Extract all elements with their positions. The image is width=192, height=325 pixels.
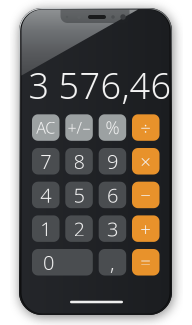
staticText: , [110,249,115,276]
button[interactable]: Divide [132,114,159,141]
button[interactable]: 0 [32,249,93,275]
staticText: ÷ [140,115,151,140]
staticText: = [140,250,151,275]
button[interactable]: 1 [32,215,59,242]
staticText: AC [36,117,55,138]
staticText: − [140,183,151,207]
button[interactable]: 9 [99,148,126,174]
button[interactable]: Minus [132,182,159,208]
button[interactable]: Decimal [99,249,126,275]
staticText: 8 [73,148,84,175]
button[interactable]: 2 [65,215,93,242]
staticText: +/– [67,117,90,138]
staticText: 9 [107,148,118,175]
button[interactable]: Equals [132,249,159,275]
staticText: 5 [73,182,84,208]
staticText: 2 [73,215,84,242]
button[interactable]: 5 [65,182,93,208]
staticText: 3 [107,215,118,242]
button[interactable]: Plus minus [65,114,93,141]
button[interactable]: 6 [99,182,126,208]
staticText: % [105,116,119,139]
button[interactable]: All clear [32,114,59,141]
staticText: 7 [40,148,51,175]
staticText: 4 [40,182,51,208]
button[interactable]: 3 [99,215,126,242]
staticText: 0 [43,249,54,276]
staticText: 3 576,46 [28,61,171,109]
staticText: 6 [107,182,118,208]
staticText: × [140,149,151,174]
button[interactable]: 8 [65,148,93,174]
button[interactable]: Multiply [132,148,159,174]
button[interactable]: Percent [99,114,126,141]
staticText: + [140,216,151,241]
button[interactable]: Plus [132,215,159,242]
button[interactable]: 4 [32,182,59,208]
button[interactable]: 7 [32,148,59,174]
staticText: 1 [40,215,51,242]
